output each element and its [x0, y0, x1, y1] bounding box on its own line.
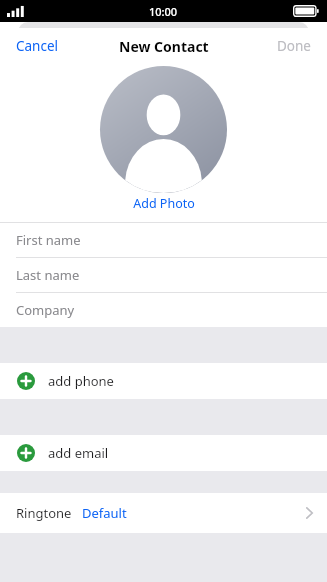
- button[interactable]: Done: [261, 30, 327, 62]
- staticText: 10:00: [149, 4, 178, 19]
- staticText: add phone: [48, 372, 114, 390]
- staticText: Cancel: [16, 37, 59, 55]
- button[interactable]: Ringtone: [0, 493, 327, 533]
- button[interactable]: add phone: [0, 363, 327, 399]
- button[interactable]: First name: [0, 223, 327, 257]
- button[interactable]: add email: [0, 435, 327, 471]
- button[interactable]: Company: [0, 293, 327, 327]
- staticText: add email: [48, 444, 109, 462]
- staticText: Default: [82, 504, 127, 522]
- staticText: New Contact: [119, 37, 209, 56]
- staticText: Add Photo: [133, 195, 195, 212]
- staticText: First name: [16, 231, 81, 249]
- staticText: Done: [277, 37, 311, 55]
- staticText: Last name: [16, 266, 80, 284]
- button[interactable]: Cancel: [0, 30, 75, 62]
- button[interactable]: Add Photo: [0, 195, 327, 218]
- staticText: Ringtone: [16, 504, 72, 522]
- staticText: Company: [16, 301, 75, 319]
- button[interactable]: Add Photo: [100, 66, 227, 193]
- button[interactable]: Last name: [0, 258, 327, 292]
